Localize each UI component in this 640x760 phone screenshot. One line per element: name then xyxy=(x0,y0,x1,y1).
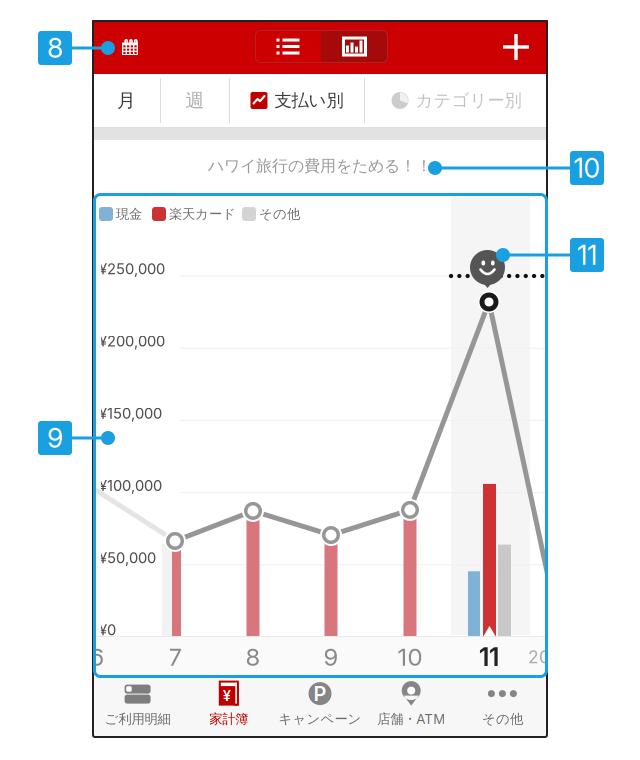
button[interactable]: List view xyxy=(255,30,321,63)
button[interactable]: ¥ xyxy=(183,678,274,738)
button[interactable]: 月 xyxy=(0,0,640,760)
staticText: 11 xyxy=(577,239,597,271)
button[interactable]: Chart view xyxy=(321,30,388,63)
staticText: ¥200,000 xyxy=(99,332,165,350)
staticText: ¥50,000 xyxy=(99,549,156,567)
staticText: P xyxy=(313,681,326,706)
button[interactable]: Add xyxy=(0,0,640,760)
staticText: 月 xyxy=(117,89,136,112)
button[interactable]: P xyxy=(274,678,366,738)
staticText: 週 xyxy=(185,89,204,112)
staticText: 11 xyxy=(479,642,499,672)
staticText: ¥ xyxy=(223,687,231,704)
staticText: 7 xyxy=(168,642,181,671)
staticText: ¥150,000 xyxy=(99,404,162,422)
staticText: 8 xyxy=(47,32,63,64)
staticText: 支払い別 xyxy=(274,90,343,111)
staticText: キャンペーン xyxy=(278,711,361,727)
staticText: ご利用明細 xyxy=(105,711,171,727)
button[interactable]: 支払い別 xyxy=(0,0,640,760)
staticText: その他 xyxy=(259,206,300,222)
button[interactable]: Calendar xyxy=(0,0,640,760)
staticText: 10 xyxy=(573,152,600,184)
staticText: 9 xyxy=(323,642,338,671)
button[interactable]: ご利用明細 xyxy=(92,678,183,738)
staticText: ¥100,000 xyxy=(99,477,162,494)
staticText: 現金 xyxy=(116,206,142,222)
button[interactable]: 店舗・ATM xyxy=(366,678,457,738)
staticText: ¥0 xyxy=(99,621,116,639)
staticText: ¥250,000 xyxy=(99,260,165,278)
staticText: 9 xyxy=(47,422,63,454)
staticText: 20 xyxy=(528,646,550,667)
staticText: カテゴリー別 xyxy=(415,90,521,111)
staticText: ハワイ旅行の費用をためる！！ xyxy=(208,156,432,176)
button[interactable]: カテゴリー別 xyxy=(0,0,640,760)
staticText: 店舗・ATM xyxy=(377,711,445,727)
button[interactable]: 週 xyxy=(0,0,640,760)
button[interactable]: その他 xyxy=(457,678,548,738)
staticText: 10 xyxy=(397,642,422,671)
staticText: 8 xyxy=(245,642,260,671)
staticText: その他 xyxy=(482,711,523,727)
staticText: 家計簿 xyxy=(209,711,248,727)
staticText: 楽天カード xyxy=(169,206,236,222)
staticText: 6 xyxy=(89,642,104,671)
